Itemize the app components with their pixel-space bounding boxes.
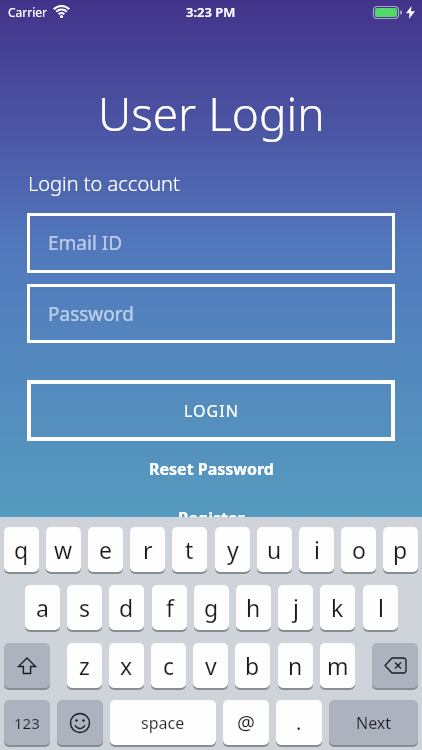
staticText: User Login	[98, 82, 325, 145]
button[interactable]: LOGIN	[27, 380, 395, 441]
button[interactable]: j	[278, 585, 313, 630]
staticText: d	[119, 592, 134, 623]
button[interactable]: a	[25, 585, 60, 630]
staticText: z	[79, 650, 90, 681]
staticText: x	[120, 650, 133, 681]
staticText: p	[393, 534, 408, 565]
button[interactable]: z	[67, 643, 102, 688]
staticText: @	[237, 709, 255, 736]
staticText: Register	[178, 507, 245, 529]
button[interactable]: c	[151, 643, 186, 688]
button[interactable]: v	[193, 643, 228, 688]
button[interactable]: g	[194, 585, 229, 630]
button[interactable]: o	[341, 527, 376, 572]
button[interactable]: 123	[4, 700, 50, 745]
staticText: l	[378, 592, 384, 623]
button[interactable]: b	[235, 643, 270, 688]
button[interactable]: f	[152, 585, 187, 630]
button[interactable]: t	[172, 527, 207, 572]
button[interactable]: k	[320, 585, 355, 630]
button[interactable]: x	[109, 643, 144, 688]
staticText: k	[331, 592, 344, 623]
staticText: o	[352, 534, 366, 565]
staticText: i	[314, 534, 320, 565]
staticText: .	[296, 709, 302, 736]
button[interactable]: .	[276, 700, 322, 745]
staticText: b	[245, 650, 260, 681]
button[interactable]	[4, 643, 50, 688]
button[interactable]: Next	[329, 700, 418, 745]
button[interactable]: n	[278, 643, 313, 688]
staticText: Email ID	[48, 230, 123, 256]
staticText: w	[54, 534, 73, 565]
staticText: y	[227, 534, 239, 565]
button[interactable]	[372, 643, 418, 688]
staticText: t	[185, 534, 194, 565]
staticText: m	[327, 650, 349, 681]
button[interactable]: i	[299, 527, 334, 572]
staticText: Password	[48, 301, 134, 327]
staticText: j	[293, 592, 299, 623]
staticText: h	[246, 592, 261, 623]
staticText: Reset Password	[149, 458, 274, 480]
button[interactable]: h	[236, 585, 271, 630]
button[interactable]: space	[110, 700, 216, 745]
button[interactable]: @	[223, 700, 269, 745]
button[interactable]: u	[257, 527, 292, 572]
button[interactable]: y	[215, 527, 250, 572]
staticText: LOGIN	[184, 400, 239, 422]
button[interactable]: s	[67, 585, 102, 630]
button[interactable]: l	[363, 585, 398, 630]
staticText: r	[143, 534, 153, 565]
staticText: e	[99, 534, 112, 565]
button[interactable]	[57, 700, 103, 745]
staticText: a	[36, 592, 49, 623]
staticText: Next	[356, 712, 392, 734]
button[interactable]: m	[320, 643, 355, 688]
button[interactable]: p	[383, 527, 418, 572]
button[interactable]: Password	[27, 284, 395, 343]
button[interactable]: e	[88, 527, 123, 572]
staticText: g	[204, 592, 219, 623]
staticText: v	[205, 650, 217, 681]
button[interactable]: Reset Password	[149, 458, 274, 480]
button[interactable]: Register	[178, 507, 245, 529]
button[interactable]: q	[4, 527, 39, 572]
button[interactable]: w	[46, 527, 81, 572]
button[interactable]: d	[109, 585, 144, 630]
button[interactable]: r	[130, 527, 165, 572]
staticText: 123	[14, 713, 40, 733]
button[interactable]: Email ID	[27, 213, 395, 273]
staticText: Carrier	[8, 4, 48, 20]
staticText: n	[288, 650, 303, 681]
staticText: 3:23 PM	[186, 3, 236, 21]
staticText: space	[141, 712, 185, 734]
staticText: f	[166, 592, 174, 623]
staticText: Login to account	[28, 170, 180, 197]
staticText: c	[163, 650, 175, 681]
staticText: q	[14, 534, 29, 565]
staticText: u	[267, 534, 282, 565]
staticText: s	[79, 592, 91, 623]
